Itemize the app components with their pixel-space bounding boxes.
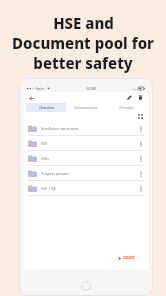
button[interactable]: More options [137,125,144,132]
staticText: better safety [33,53,133,73]
button[interactable]: HSE | QA [24,181,148,195]
staticText: Document pool for [12,33,154,53]
staticText: FDV [41,141,48,146]
button[interactable]: Documentation [66,103,106,112]
button[interactable]: More options [137,140,144,147]
button[interactable]: Offer [24,151,148,165]
button[interactable]: Installation instructions [24,121,148,135]
button[interactable]: More options [137,170,144,177]
staticText: Progress pictures [41,171,69,176]
staticText: CREATE [123,256,135,260]
button[interactable]: Edit [125,93,134,102]
staticText: Overview [39,106,54,110]
staticText: Deviation [119,106,134,110]
staticText: HSE and [53,13,114,33]
button[interactable]: Delete [136,93,145,102]
button[interactable]: More options [137,185,144,192]
staticText: Carrier [36,87,45,91]
button[interactable]: FDV [24,136,148,150]
staticText: 9:41 AM [86,87,96,91]
button[interactable]: Grid view [137,113,144,120]
button[interactable]: Overview [26,103,66,112]
staticText: Documentation [74,106,98,110]
staticText: Installation instructions [41,126,79,131]
button[interactable]: Progress pictures [24,166,148,180]
staticText: HSE | QA [41,186,56,191]
staticText: 65% [132,87,137,90]
button[interactable]: Deviation [106,103,146,112]
staticText: Offer [41,156,50,161]
button[interactable]: Back [27,94,35,102]
button[interactable]: CREATE [112,253,141,263]
button[interactable]: More options [137,155,144,162]
